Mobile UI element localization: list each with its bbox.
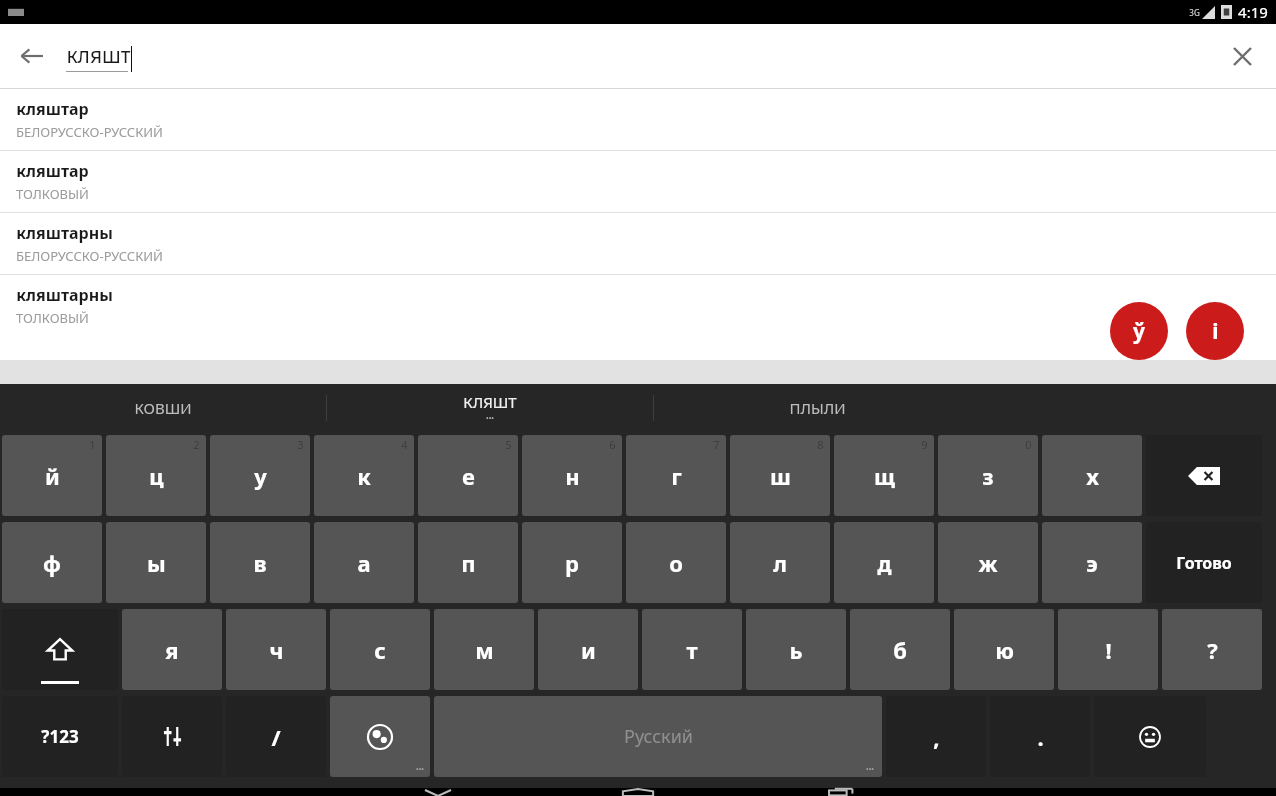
button[interactable]: ы <box>106 522 206 603</box>
staticText: и <box>581 635 596 665</box>
button[interactable]: г <box>626 435 726 516</box>
button[interactable]: Clear <box>1220 34 1264 78</box>
staticText: кляштарны <box>16 284 113 306</box>
button[interactable]: и <box>538 609 638 690</box>
button[interactable]: ф <box>2 522 102 603</box>
button[interactable]: ? <box>1162 609 1262 690</box>
button[interactable]: Back <box>10 34 54 78</box>
button[interactable]: кляштарны <box>0 275 1276 335</box>
staticText: БЕЛОРУССКО-РУССКИЙ <box>16 123 163 141</box>
button[interactable]: х <box>1042 435 1142 516</box>
button[interactable]: о <box>626 522 726 603</box>
button[interactable]: Emoji <box>1094 696 1206 777</box>
button[interactable]: Change language <box>330 696 430 777</box>
button[interactable]: э <box>1042 522 1142 603</box>
button[interactable]: у <box>210 435 310 516</box>
button[interactable]: с <box>330 609 430 690</box>
button[interactable]: ц <box>106 435 206 516</box>
button[interactable]: е <box>418 435 518 516</box>
button[interactable]: к <box>314 435 414 516</box>
staticText: 7 <box>713 437 720 452</box>
button[interactable]: в <box>210 522 310 603</box>
button[interactable]: н <box>522 435 622 516</box>
button[interactable]: ! <box>1058 609 1158 690</box>
staticText: ?123 <box>41 725 79 748</box>
staticText: е <box>462 461 475 491</box>
button[interactable]: р <box>522 522 622 603</box>
staticText: 1 <box>89 437 96 452</box>
button[interactable]: л <box>730 522 830 603</box>
button[interactable]: т <box>642 609 742 690</box>
staticText: г <box>671 461 682 491</box>
staticText: к <box>357 461 371 491</box>
staticText: ш <box>770 461 791 491</box>
staticText: ! <box>1105 635 1112 665</box>
button[interactable]: я <box>122 609 222 690</box>
button[interactable]: Recent apps <box>738 788 938 796</box>
staticText: 9 <box>921 437 928 452</box>
button[interactable]: п <box>418 522 518 603</box>
staticText: Русский <box>624 724 693 749</box>
button[interactable]: ю <box>954 609 1054 690</box>
staticText: п <box>461 548 476 578</box>
staticText: б <box>893 635 907 665</box>
staticText: ••• <box>866 765 874 775</box>
staticText: , <box>933 722 940 752</box>
button[interactable]: ПЛЫЛИ <box>654 384 980 432</box>
staticText: ф <box>43 548 61 578</box>
staticText: / <box>271 722 281 752</box>
staticText: ? <box>1207 635 1218 665</box>
staticText: ч <box>269 635 284 665</box>
button[interactable]: Insert i <box>1186 302 1244 360</box>
button[interactable]: Backspace <box>1146 435 1262 516</box>
button[interactable]: . <box>990 696 1090 777</box>
button[interactable]: кляштарны <box>0 213 1276 274</box>
staticText: ц <box>149 461 164 491</box>
staticText: э <box>1086 548 1098 578</box>
button[interactable]: КЛЯШТ <box>327 384 653 432</box>
staticText: а <box>357 548 371 578</box>
button[interactable]: ш <box>730 435 830 516</box>
button[interactable]: ч <box>226 609 326 690</box>
staticText: 4:19 <box>1238 2 1268 22</box>
button[interactable]: / <box>226 696 326 777</box>
staticText: ы <box>147 548 166 578</box>
button[interactable]: з <box>938 435 1038 516</box>
staticText: д <box>877 548 892 578</box>
staticText: Готово <box>1176 552 1232 574</box>
button[interactable]: м <box>434 609 534 690</box>
button[interactable]: ь <box>746 609 846 690</box>
button[interactable]: д <box>834 522 934 603</box>
staticText: кляштар <box>16 98 89 120</box>
button[interactable]: КОВШИ <box>0 384 326 432</box>
button[interactable]: й <box>2 435 102 516</box>
staticText: ••• <box>486 414 494 424</box>
staticText: ь <box>789 635 803 665</box>
staticText: м <box>475 635 494 665</box>
staticText: я <box>165 635 179 665</box>
button[interactable]: а <box>314 522 414 603</box>
staticText: 2 <box>193 437 200 452</box>
button[interactable]: ?123 <box>2 696 118 777</box>
button[interactable]: Settings <box>122 696 222 777</box>
staticText: о <box>669 548 683 578</box>
staticText: р <box>565 548 579 578</box>
staticText: ТОЛКОВЫЙ <box>16 185 89 203</box>
staticText: ю <box>995 635 1014 665</box>
button[interactable]: Hide keyboard <box>338 788 538 796</box>
button[interactable]: Insert u breve <box>1110 302 1168 360</box>
staticText: 4 <box>401 437 408 452</box>
button[interactable]: Space <box>434 696 882 777</box>
button[interactable]: Готово <box>1146 522 1262 603</box>
button[interactable]: щ <box>834 435 934 516</box>
button[interactable]: б <box>850 609 950 690</box>
button[interactable]: кляштар <box>0 151 1276 212</box>
staticText: ж <box>978 548 998 578</box>
staticText: л <box>773 548 787 578</box>
button[interactable]: ж <box>938 522 1038 603</box>
button[interactable]: , <box>886 696 986 777</box>
button[interactable]: Shift <box>2 609 118 690</box>
button[interactable]: Home <box>538 788 738 796</box>
button[interactable]: кляштар <box>0 89 1276 150</box>
staticText: ПЛЫЛИ <box>789 398 846 418</box>
